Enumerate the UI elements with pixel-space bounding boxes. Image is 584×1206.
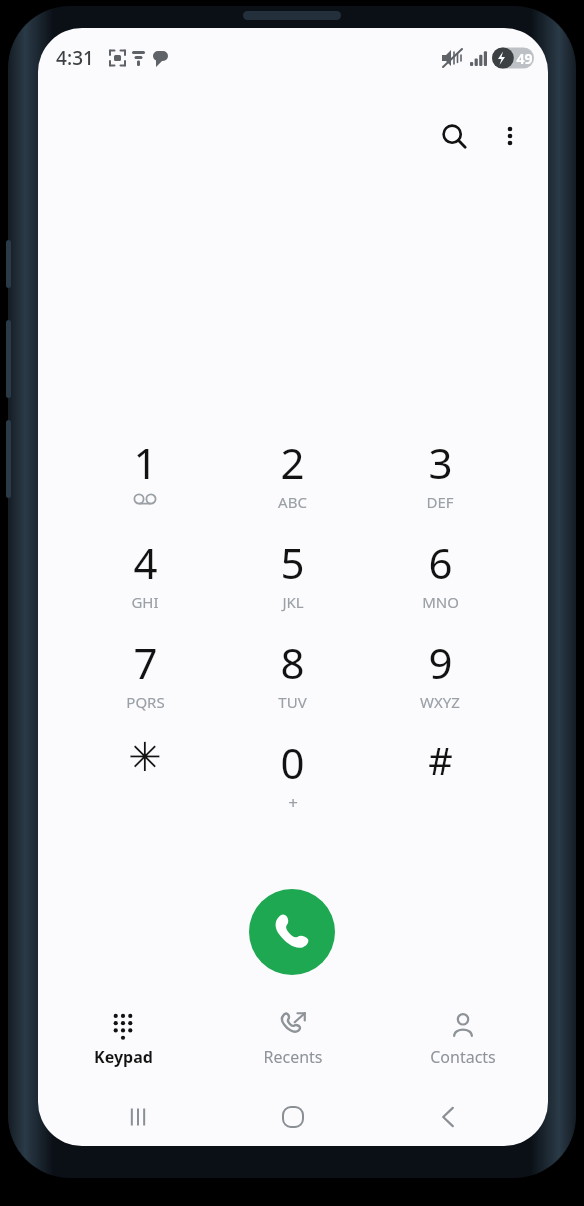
button[interactable]: Keypad <box>38 994 208 1090</box>
button[interactable]: Search <box>430 112 478 160</box>
staticText: 1 <box>133 434 158 491</box>
button[interactable]: More options <box>486 112 534 160</box>
staticText: TUV <box>278 692 307 712</box>
button[interactable]: Recent apps <box>110 1089 166 1145</box>
button[interactable]: 3 <box>378 434 502 526</box>
staticText: Recents <box>263 1046 323 1068</box>
staticText: 3 <box>428 434 453 491</box>
button[interactable]: 0 <box>230 734 354 826</box>
button[interactable]: # <box>378 734 502 826</box>
staticText: ABC <box>278 492 307 512</box>
staticText: Contacts <box>430 1046 496 1068</box>
staticText: WXYZ <box>420 692 460 712</box>
staticText: 4 <box>133 534 158 591</box>
staticText: 6 <box>428 534 453 591</box>
staticText: 49 <box>516 49 533 68</box>
button[interactable]: Recents <box>208 994 378 1090</box>
staticText: ✳ <box>128 734 162 781</box>
staticText: DEF <box>426 492 454 512</box>
staticText: 5 <box>280 534 305 591</box>
staticText: + <box>288 791 298 814</box>
button[interactable]: 2 <box>230 434 354 526</box>
staticText: PQRS <box>126 692 165 712</box>
button[interactable]: 1 <box>83 434 207 526</box>
button[interactable]: Home <box>265 1089 321 1145</box>
button[interactable]: ✳ <box>83 734 207 826</box>
staticText: JKL <box>282 592 304 612</box>
staticText: 9 <box>428 634 453 691</box>
staticText: 7 <box>133 634 158 691</box>
staticText: 8 <box>280 634 305 691</box>
button[interactable]: Back <box>420 1089 476 1145</box>
button[interactable]: 6 <box>378 534 502 626</box>
button[interactable]: Contacts <box>378 994 548 1090</box>
staticText: MNO <box>422 592 459 612</box>
staticText: GHI <box>131 592 159 612</box>
button[interactable]: 9 <box>378 634 502 726</box>
button[interactable]: 7 <box>83 634 207 726</box>
button[interactable]: Call <box>249 889 335 975</box>
button[interactable]: 4 <box>83 534 207 626</box>
button[interactable]: 8 <box>230 634 354 726</box>
button[interactable]: 5 <box>230 534 354 626</box>
staticText: 4:31 <box>56 45 94 71</box>
staticText: 2 <box>280 434 305 491</box>
staticText: Keypad <box>94 1046 153 1068</box>
staticText: # <box>428 734 453 786</box>
staticText: 0 <box>280 734 305 791</box>
